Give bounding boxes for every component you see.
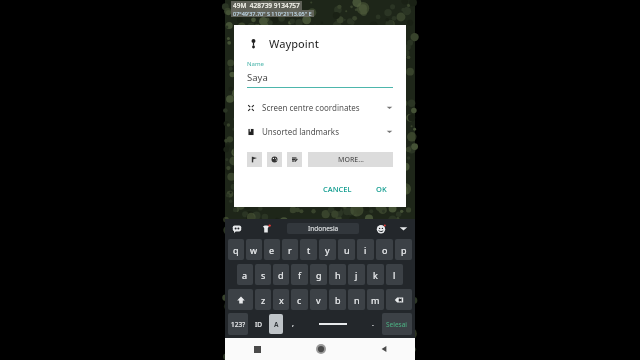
button[interactable]: Edit description xyxy=(287,152,302,167)
button[interactable]: u xyxy=(338,239,355,260)
staticText: , xyxy=(292,319,294,329)
button[interactable]: o xyxy=(376,239,393,260)
button[interactable]: g xyxy=(310,264,327,285)
button[interactable]: b xyxy=(329,289,346,310)
button[interactable]: m xyxy=(367,289,384,310)
staticText: x xyxy=(279,294,284,306)
staticText: . xyxy=(372,319,374,329)
button[interactable]: h xyxy=(329,264,346,285)
staticText: n xyxy=(354,294,360,306)
button[interactable]: r xyxy=(282,239,298,260)
button[interactable]: a xyxy=(237,264,253,285)
staticText: w xyxy=(250,244,258,256)
staticText: c xyxy=(297,294,302,306)
button[interactable]: w xyxy=(246,239,262,260)
staticText: CANCEL xyxy=(323,184,352,194)
button[interactable]: More options xyxy=(397,222,410,235)
staticText: 49M 428739 9134757 xyxy=(233,1,300,10)
button[interactable]: n xyxy=(348,289,365,310)
staticText: p xyxy=(401,244,407,256)
button[interactable]: j xyxy=(348,264,365,285)
staticText: e xyxy=(269,244,275,256)
button[interactable]: Period xyxy=(366,313,380,335)
button[interactable]: ID xyxy=(250,313,266,335)
button[interactable]: Stickers xyxy=(230,222,243,235)
staticText: f xyxy=(298,269,302,281)
button[interactable]: y xyxy=(319,239,336,260)
button[interactable]: k xyxy=(367,264,384,285)
button[interactable]: v xyxy=(310,289,327,310)
button[interactable]: x xyxy=(273,289,289,310)
button[interactable]: Shift xyxy=(228,289,253,310)
staticText: q xyxy=(233,244,239,256)
button[interactable]: s xyxy=(255,264,271,285)
staticText: j xyxy=(355,269,358,281)
staticText: Waypoint xyxy=(269,36,319,51)
staticText: t xyxy=(307,244,311,256)
button[interactable]: Backspace xyxy=(386,289,412,310)
button[interactable]: l xyxy=(386,264,403,285)
staticText: i xyxy=(364,244,367,256)
button[interactable]: i xyxy=(357,239,374,260)
staticText: Name xyxy=(247,60,264,68)
button[interactable]: MORE... xyxy=(308,152,393,167)
button[interactable]: Language xyxy=(269,314,283,334)
button[interactable]: Unsorted landmarks xyxy=(234,124,406,139)
staticText: 07°49'37.70" S 110°21'13.05" E xyxy=(233,10,312,17)
button[interactable]: Choose colour xyxy=(267,152,282,167)
staticText: Screen centre coordinates xyxy=(262,102,360,113)
staticText: s xyxy=(261,269,266,281)
staticText: k xyxy=(373,269,378,281)
button[interactable]: d xyxy=(273,264,289,285)
button[interactable]: 123? xyxy=(228,313,248,335)
staticText: Selesai xyxy=(386,320,408,329)
staticText: r xyxy=(288,244,292,256)
button[interactable]: Recent apps xyxy=(225,338,289,360)
button[interactable]: Screen centre coordinates xyxy=(234,100,406,115)
staticText: o xyxy=(382,244,388,256)
staticText: Indonesia xyxy=(308,224,339,233)
button[interactable]: c xyxy=(291,289,308,310)
button[interactable]: Emoji xyxy=(374,222,387,235)
button[interactable]: e xyxy=(264,239,280,260)
button[interactable]: Themes xyxy=(259,222,272,235)
staticText: a xyxy=(242,269,248,281)
staticText: z xyxy=(261,294,266,306)
staticText: h xyxy=(335,269,341,281)
staticText: A xyxy=(274,320,279,329)
staticText: Unsorted landmarks xyxy=(262,126,339,137)
button[interactable]: Indonesia xyxy=(287,223,359,234)
button[interactable]: OK xyxy=(371,181,392,197)
staticText: Saya xyxy=(247,71,268,84)
button[interactable]: f xyxy=(291,264,308,285)
button[interactable]: z xyxy=(255,289,271,310)
staticText: y xyxy=(325,244,330,256)
staticText: l xyxy=(393,269,396,281)
button[interactable]: t xyxy=(300,239,317,260)
staticText: g xyxy=(316,269,322,281)
button[interactable]: p xyxy=(395,239,412,260)
staticText: OK xyxy=(376,184,387,194)
button[interactable]: Back xyxy=(352,338,415,360)
staticText: m xyxy=(371,294,380,306)
staticText: v xyxy=(316,294,321,306)
staticText: 123? xyxy=(231,320,245,329)
button[interactable]: Space xyxy=(302,313,364,335)
button[interactable]: Set flag xyxy=(247,152,262,167)
button[interactable]: Selesai xyxy=(382,313,412,335)
staticText: u xyxy=(344,244,350,256)
button[interactable]: Comma xyxy=(286,313,300,335)
button[interactable]: CANCEL xyxy=(318,181,357,197)
button[interactable]: Home xyxy=(289,338,352,360)
staticText: ID xyxy=(255,320,262,329)
staticText: MORE... xyxy=(338,155,364,165)
button[interactable]: q xyxy=(228,239,244,260)
staticText: b xyxy=(335,294,341,306)
staticText: d xyxy=(278,269,284,281)
